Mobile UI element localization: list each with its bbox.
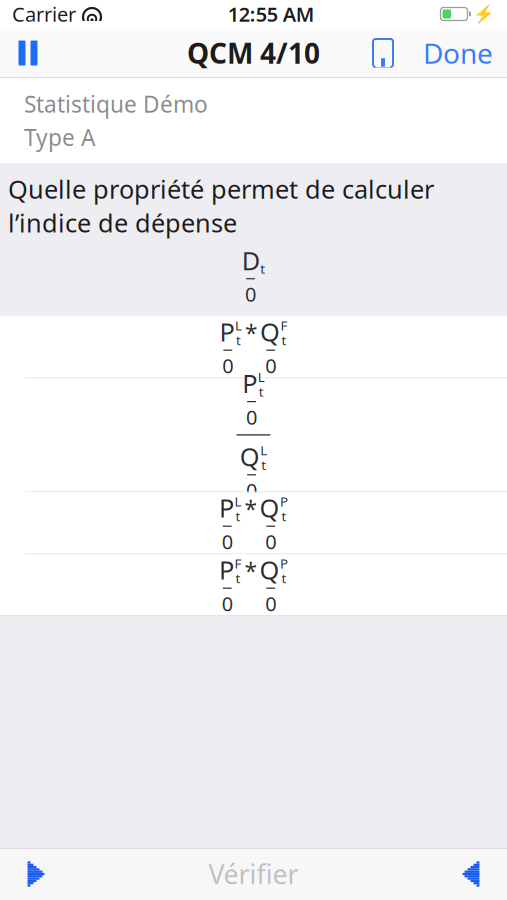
staticText: P bbox=[219, 553, 234, 586]
staticText: t bbox=[261, 456, 266, 474]
staticText: 0 bbox=[222, 352, 233, 379]
staticText: Statistique Démo bbox=[24, 89, 208, 119]
staticText: Vérifier bbox=[208, 856, 298, 892]
staticText: P bbox=[219, 491, 234, 524]
staticText: QCM 4/10 bbox=[187, 34, 320, 72]
button[interactable]: Previous question bbox=[0, 848, 72, 900]
staticText: Q bbox=[259, 553, 279, 586]
button[interactable]: P bbox=[0, 316, 507, 377]
staticText: L bbox=[235, 317, 242, 334]
staticText: L bbox=[260, 441, 267, 459]
staticText: t bbox=[259, 383, 264, 400]
staticText: Done bbox=[423, 34, 493, 72]
button[interactable]: Done bbox=[409, 28, 507, 78]
staticText: 12:55 AM bbox=[228, 1, 315, 27]
staticText: Quelle propriété permet de calculer l’in… bbox=[8, 172, 434, 239]
staticText: t bbox=[281, 331, 286, 349]
staticText: D bbox=[242, 243, 260, 277]
staticText: ⚡ bbox=[473, 4, 495, 24]
staticText: P bbox=[280, 555, 288, 572]
staticText: L bbox=[234, 493, 241, 510]
staticText: 0 bbox=[246, 477, 257, 503]
staticText: Carrier bbox=[12, 1, 76, 27]
staticText: * bbox=[244, 494, 256, 524]
staticText: * bbox=[245, 318, 257, 348]
staticText: L bbox=[258, 368, 265, 386]
staticText: t bbox=[281, 507, 286, 525]
staticText: 0 bbox=[245, 281, 256, 307]
staticText: P bbox=[242, 366, 257, 400]
staticText: * bbox=[244, 556, 256, 586]
staticText: t bbox=[235, 569, 240, 587]
staticText: Type A bbox=[24, 122, 95, 152]
staticText: t bbox=[235, 507, 240, 525]
staticText: 0 bbox=[265, 590, 276, 617]
staticText: P bbox=[280, 493, 288, 510]
staticText: 0 bbox=[246, 404, 257, 430]
staticText: 0 bbox=[265, 352, 276, 379]
staticText: t bbox=[260, 260, 265, 277]
staticText: 0 bbox=[222, 590, 233, 617]
staticText: Q bbox=[240, 439, 260, 473]
staticText: F bbox=[234, 555, 241, 572]
staticText: Q bbox=[260, 315, 280, 348]
button[interactable]: Bookmark bbox=[357, 28, 409, 78]
staticText: Q bbox=[259, 491, 279, 524]
staticText: F bbox=[280, 317, 287, 334]
button[interactable]: P bbox=[0, 492, 507, 553]
button[interactable]: Next question bbox=[435, 848, 507, 900]
staticText: t bbox=[236, 331, 241, 349]
staticText: t bbox=[281, 569, 286, 587]
staticText: P bbox=[219, 315, 234, 348]
staticText: 0 bbox=[265, 528, 276, 555]
button[interactable]: P bbox=[0, 554, 507, 615]
button[interactable]: Pause bbox=[0, 28, 56, 78]
button[interactable]: P bbox=[0, 378, 507, 491]
staticText: 0 bbox=[222, 528, 233, 555]
